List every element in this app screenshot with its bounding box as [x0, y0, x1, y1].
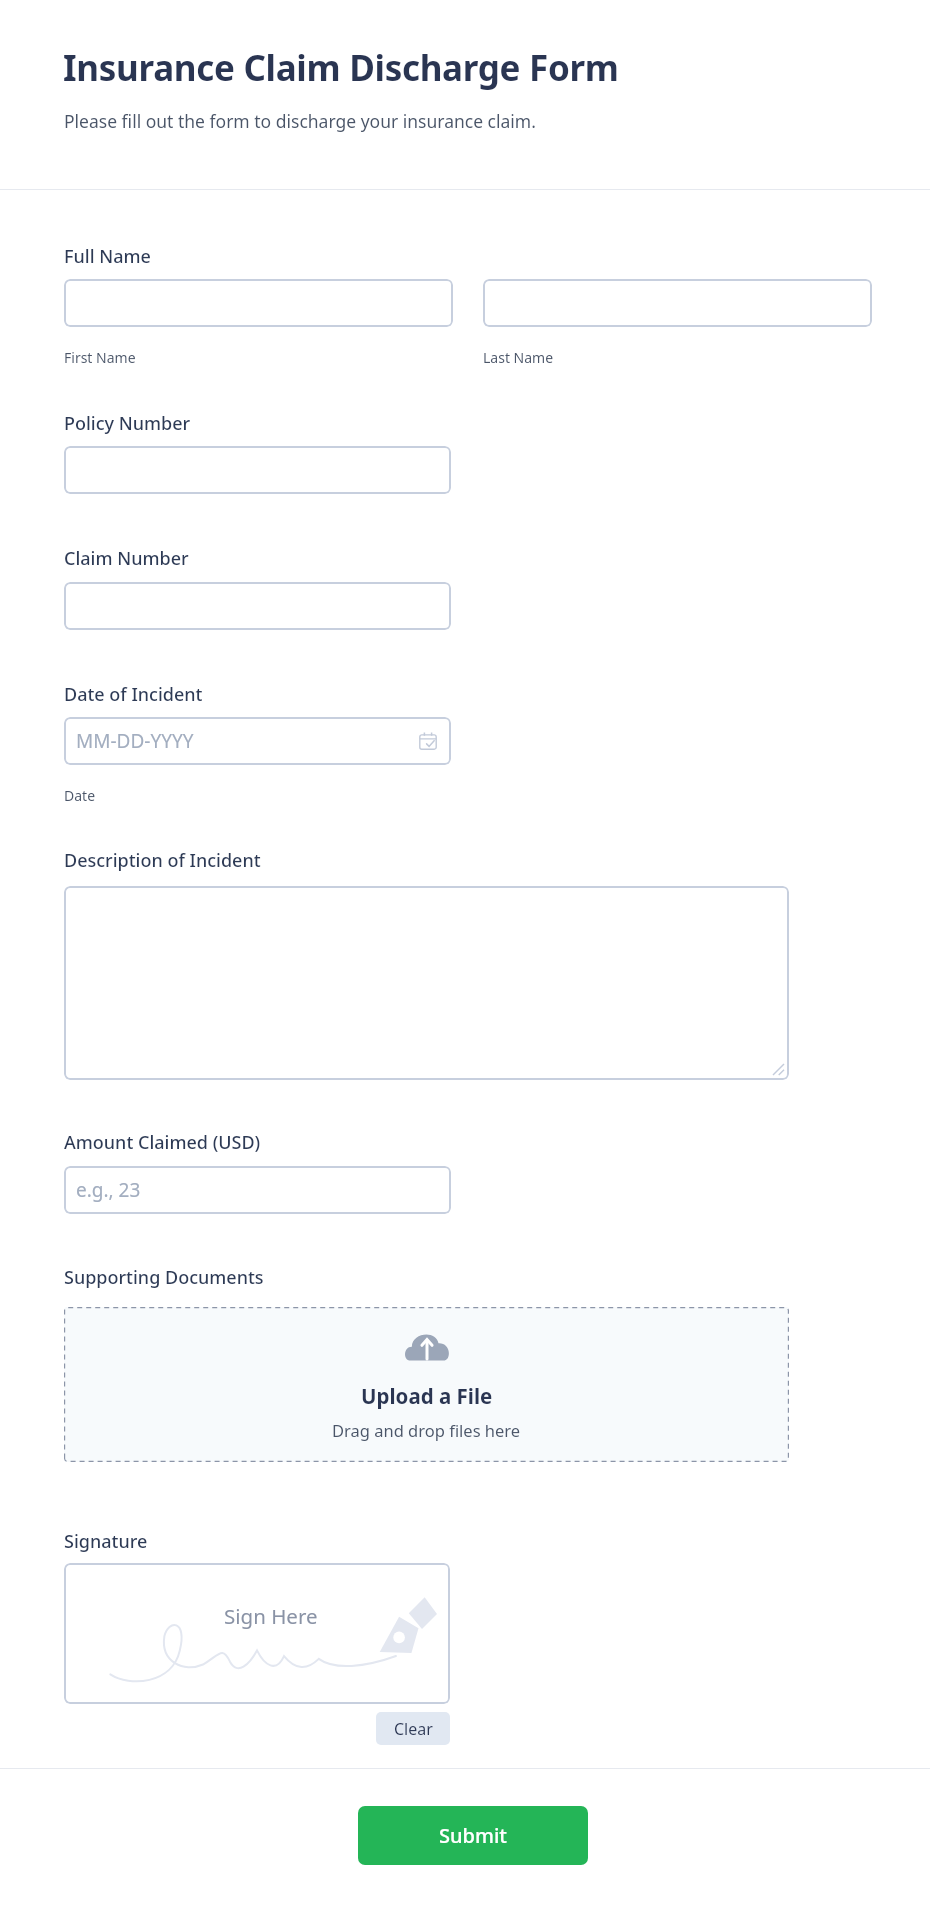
staticText: Sign Here	[224, 1602, 318, 1630]
button[interactable]	[64, 886, 789, 1080]
button[interactable]	[64, 279, 453, 327]
staticText: Supporting Documents	[64, 1265, 264, 1290]
staticText: Claim Number	[64, 546, 189, 571]
staticText: First Name	[64, 348, 136, 367]
button[interactable]: e.g., 23	[64, 1166, 451, 1214]
button[interactable]	[64, 582, 451, 630]
button[interactable]: MM-DD-YYYY	[64, 717, 451, 765]
staticText: Date of Incident	[64, 682, 203, 707]
other: Pick date	[419, 732, 437, 750]
staticText: Description of Incident	[64, 848, 261, 873]
staticText: Date	[64, 786, 96, 805]
button[interactable]: Sign Here	[64, 1563, 450, 1704]
staticText: Last Name	[483, 348, 554, 367]
staticText: Drag and drop files here	[332, 1419, 521, 1441]
staticText: Signature	[64, 1529, 148, 1554]
button[interactable]	[64, 446, 451, 494]
button[interactable]: Upload a File	[64, 1307, 789, 1462]
button[interactable]: Clear	[376, 1712, 450, 1745]
staticText: Upload a File	[361, 1382, 493, 1410]
staticText: Submit	[439, 1822, 507, 1849]
staticText: MM-DD-YYYY	[76, 728, 194, 754]
staticText: Clear	[394, 1718, 433, 1740]
button[interactable]	[483, 279, 872, 327]
staticText: Policy Number	[64, 411, 191, 436]
staticText: Insurance Claim Discharge Form	[63, 44, 619, 92]
staticText: Full Name	[64, 244, 151, 269]
button[interactable]: Submit	[358, 1806, 588, 1865]
staticText: e.g., 23	[76, 1177, 141, 1203]
staticText: Please fill out the form to discharge yo…	[64, 109, 536, 133]
staticText: Amount Claimed (USD)	[64, 1130, 261, 1155]
